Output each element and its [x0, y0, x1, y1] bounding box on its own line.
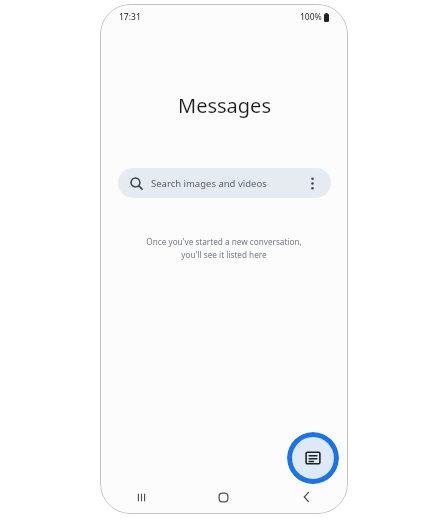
- button[interactable]: More options: [303, 174, 321, 192]
- button[interactable]: Search images and videos: [118, 168, 331, 198]
- staticText: 100%: [300, 11, 322, 23]
- staticText: Once you've started a new conversation,: [146, 236, 302, 247]
- button[interactable]: Recent apps: [100, 480, 182, 514]
- staticText: 17:31: [119, 11, 141, 23]
- button[interactable]: Home: [182, 480, 265, 514]
- staticText: you'll see it listed here: [181, 249, 267, 260]
- staticText: Search images and videos: [151, 177, 267, 190]
- staticText: Messages: [178, 92, 271, 119]
- button[interactable]: New conversation: [287, 432, 339, 484]
- button[interactable]: Back: [265, 480, 348, 514]
